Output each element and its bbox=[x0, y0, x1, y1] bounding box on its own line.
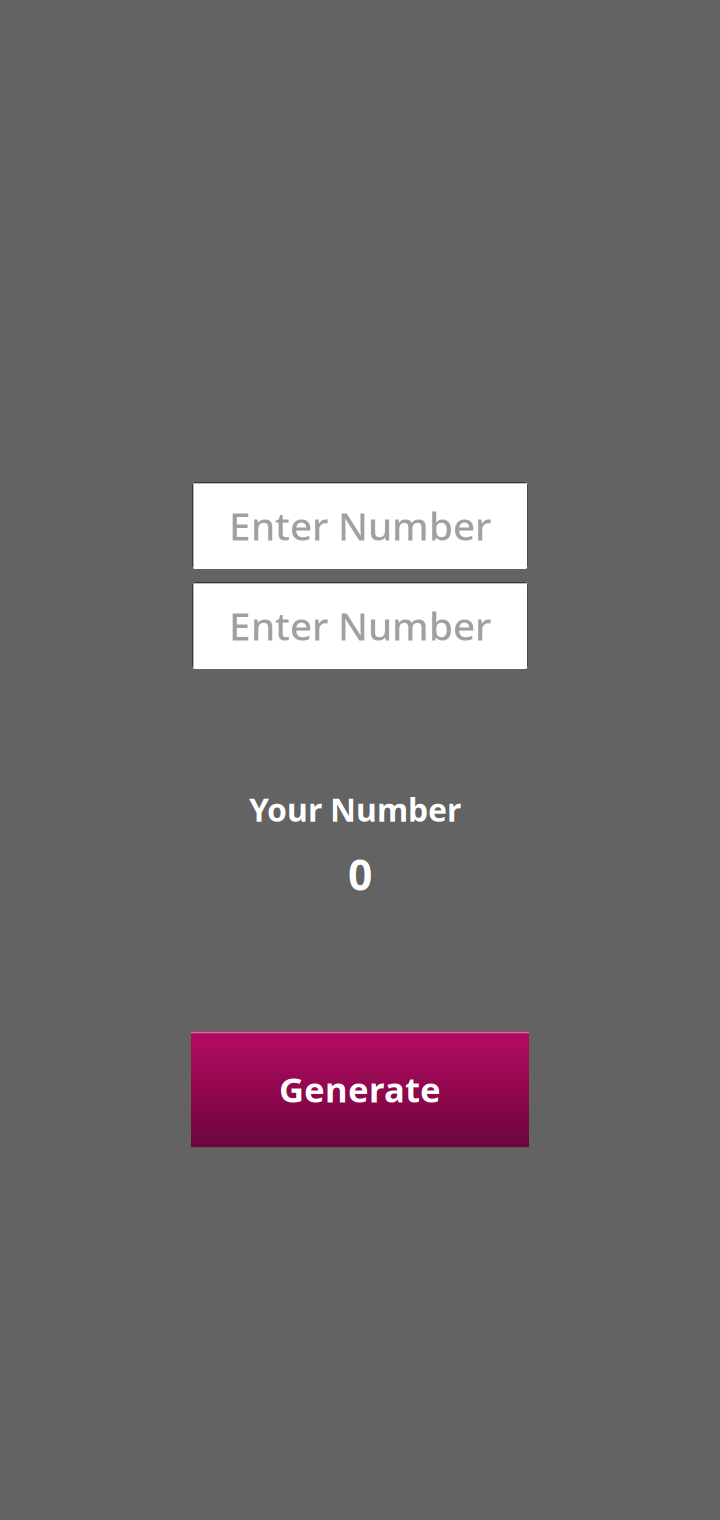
staticText: Enter Number bbox=[229, 600, 491, 651]
staticText: Your Number bbox=[249, 788, 461, 830]
staticText: 0 bbox=[348, 845, 372, 902]
button[interactable]: Enter Number bbox=[192, 582, 528, 669]
staticText: Generate bbox=[279, 1066, 441, 1112]
button[interactable]: Enter Number bbox=[192, 482, 528, 569]
staticText: Enter Number bbox=[229, 500, 491, 551]
button[interactable]: Generate bbox=[191, 1031, 529, 1147]
